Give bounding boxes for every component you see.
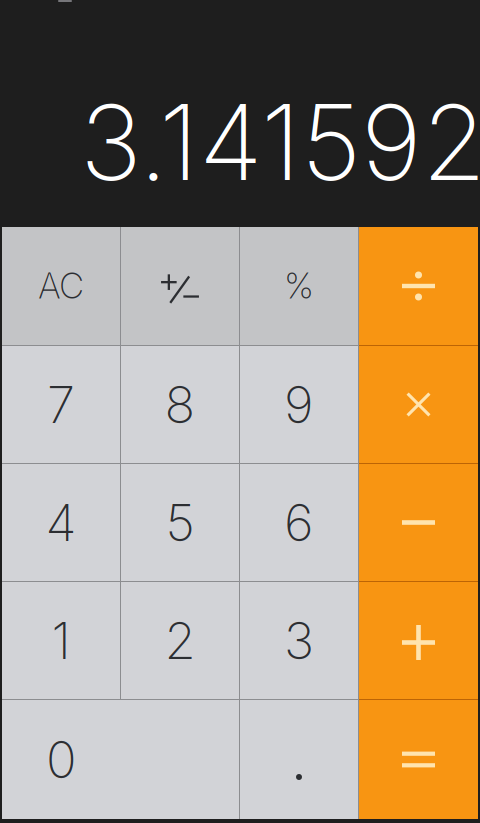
staticText: 4: [45, 492, 76, 553]
staticText: 7: [47, 374, 75, 435]
staticText: 8: [164, 374, 195, 435]
button[interactable]: 9: [240, 346, 359, 464]
button[interactable]: 0: [2, 700, 240, 819]
button[interactable]: Plus: [359, 582, 478, 700]
button[interactable]: Decimal point: [240, 700, 359, 819]
staticText: %: [284, 265, 313, 307]
button[interactable]: Divide: [359, 227, 478, 346]
button[interactable]: Minus: [359, 464, 478, 582]
button[interactable]: 1: [2, 582, 121, 700]
staticText: 2: [164, 610, 195, 671]
staticText: 6: [284, 492, 314, 553]
button[interactable]: 8: [121, 346, 240, 464]
button[interactable]: 2: [121, 582, 240, 700]
staticText: 1: [51, 610, 70, 671]
staticText: 0: [46, 729, 77, 790]
button[interactable]: 7: [2, 346, 121, 464]
button[interactable]: 3: [240, 582, 359, 700]
staticText: 5: [165, 492, 194, 553]
staticText: 9: [284, 374, 314, 435]
staticText: 3.141592: [80, 79, 480, 205]
button[interactable]: Percent: [240, 227, 359, 346]
staticText: 3: [284, 610, 314, 671]
button[interactable]: Multiply: [359, 346, 478, 464]
button[interactable]: All clear: [2, 227, 121, 346]
button[interactable]: 5: [121, 464, 240, 582]
button[interactable]: 4: [2, 464, 121, 582]
button[interactable]: 6: [240, 464, 359, 582]
staticText: AC: [38, 265, 83, 307]
button[interactable]: Equals: [359, 700, 478, 819]
button[interactable]: Change sign: [121, 227, 240, 346]
